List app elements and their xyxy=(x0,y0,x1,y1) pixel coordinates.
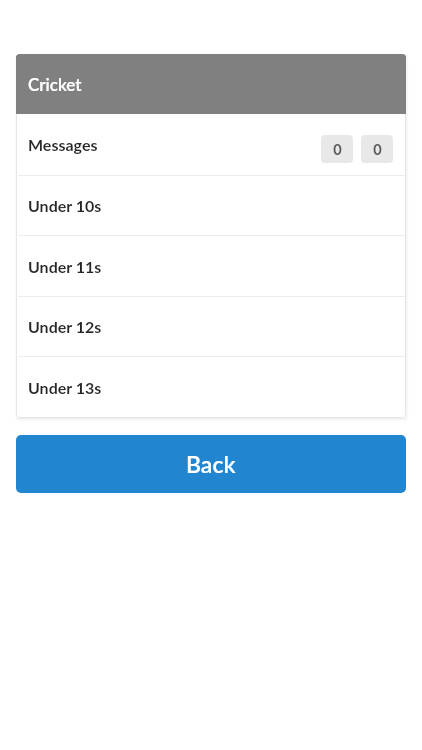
button[interactable]: Messages xyxy=(16,114,406,175)
staticText: Under 13s xyxy=(28,378,102,397)
staticText: Back xyxy=(186,450,236,478)
button[interactable]: Under 10s xyxy=(16,176,406,235)
staticText: 0 xyxy=(333,141,342,158)
button[interactable]: Back xyxy=(16,435,406,493)
staticText: Under 11s xyxy=(28,257,102,276)
button[interactable]: Under 11s xyxy=(16,236,406,296)
staticText: Cricket xyxy=(28,74,82,94)
staticText: Messages xyxy=(28,135,98,154)
button[interactable]: Under 13s xyxy=(16,357,406,418)
button[interactable]: Under 12s xyxy=(16,297,406,356)
staticText: Under 10s xyxy=(28,196,102,215)
staticText: 0 xyxy=(373,141,382,158)
staticText: Under 12s xyxy=(28,317,102,336)
